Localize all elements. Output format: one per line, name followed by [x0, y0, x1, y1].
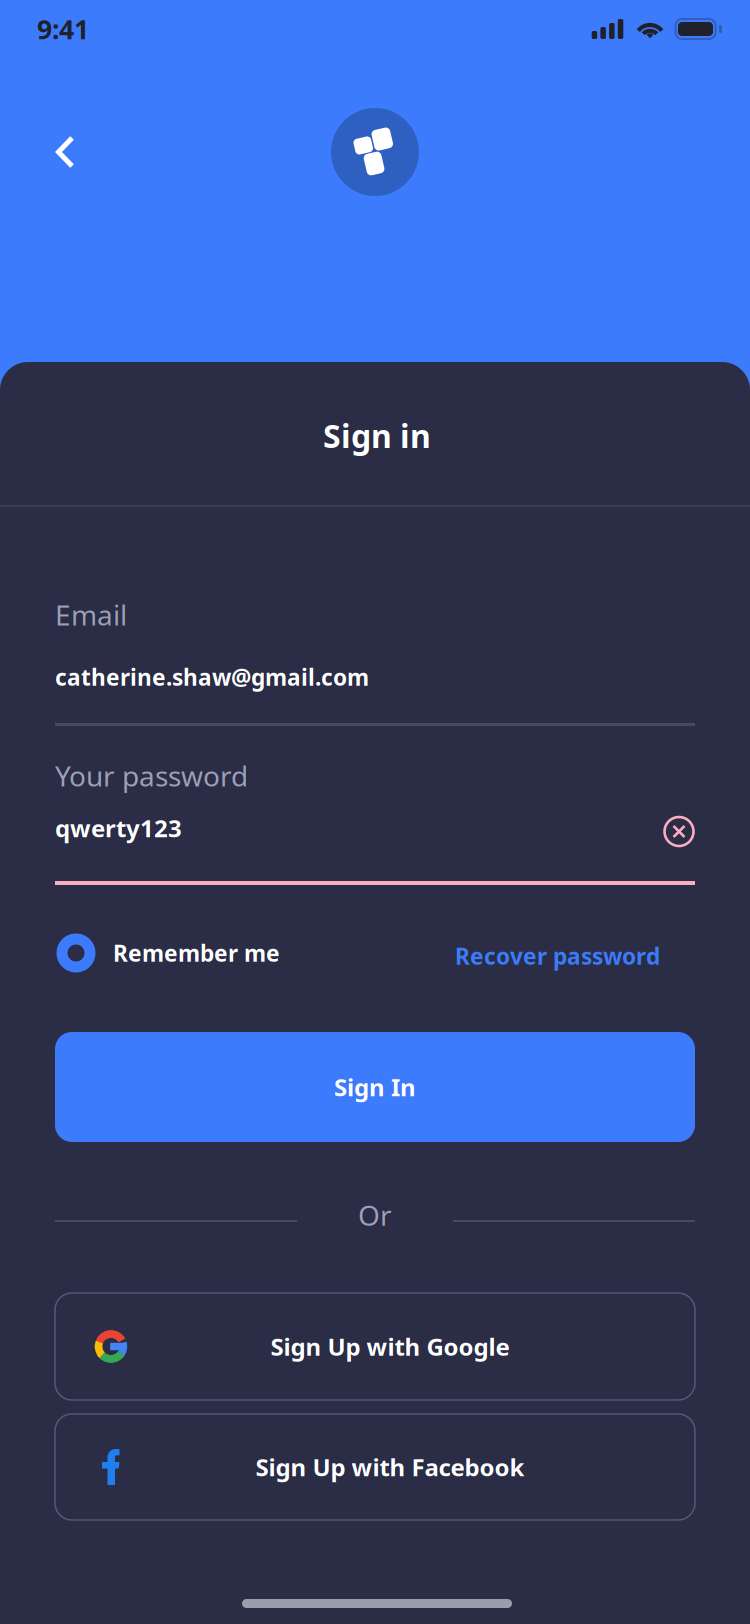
- button[interactable]: Clear password: [663, 812, 695, 844]
- staticText: Your password: [55, 757, 248, 794]
- staticText: Recover password: [455, 941, 660, 971]
- staticText: Sign In: [334, 1071, 416, 1103]
- staticText: Email: [55, 596, 127, 633]
- button[interactable]: Recover password: [455, 935, 695, 971]
- button[interactable]: Sign In: [55, 1032, 695, 1142]
- button[interactable]: Back: [37, 124, 93, 180]
- staticText: Or: [358, 1196, 392, 1234]
- button[interactable]: Sign Up with Google: [55, 1293, 695, 1400]
- button[interactable]: Remember me: [55, 933, 280, 972]
- staticText: qwerty123: [55, 812, 182, 844]
- button[interactable]: Sign Up with Facebook: [55, 1414, 695, 1520]
- staticText: Sign Up with Google: [270, 1331, 509, 1362]
- staticText: catherine.shaw@gmail.com: [55, 662, 369, 692]
- staticText: Sign Up with Facebook: [255, 1451, 524, 1483]
- staticText: Sign in: [323, 414, 431, 457]
- staticText: 9:41: [37, 11, 89, 47]
- staticText: Remember me: [113, 938, 280, 968]
